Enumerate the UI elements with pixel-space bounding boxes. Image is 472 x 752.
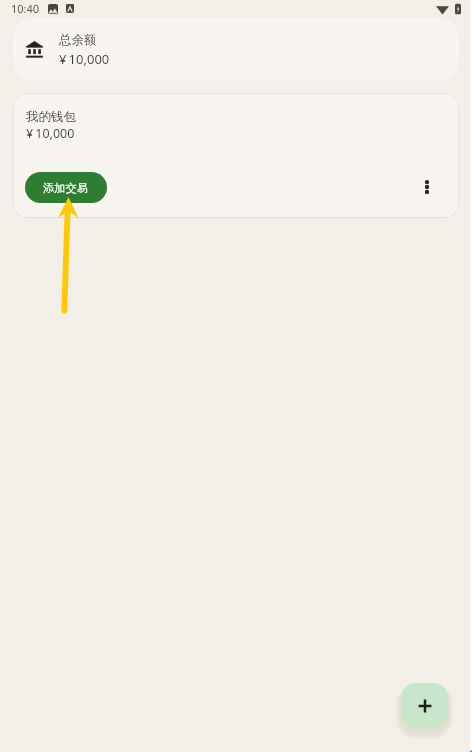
button[interactable]: 总余额 — [13, 18, 459, 80]
staticText: 总余额 — [59, 32, 97, 48]
button[interactable]: 添加交易 — [25, 172, 107, 203]
button[interactable]: More options — [409, 169, 445, 205]
button[interactable]: 我的钱包 — [13, 93, 459, 218]
button[interactable]: Add — [402, 683, 447, 728]
staticText: 我的钱包 — [26, 109, 76, 125]
staticText: ¥ 10,000 — [59, 50, 110, 68]
staticText: ¥ 10,000 — [26, 125, 75, 142]
staticText: 10:40 — [11, 1, 40, 16]
staticText: 添加交易 — [43, 181, 89, 195]
